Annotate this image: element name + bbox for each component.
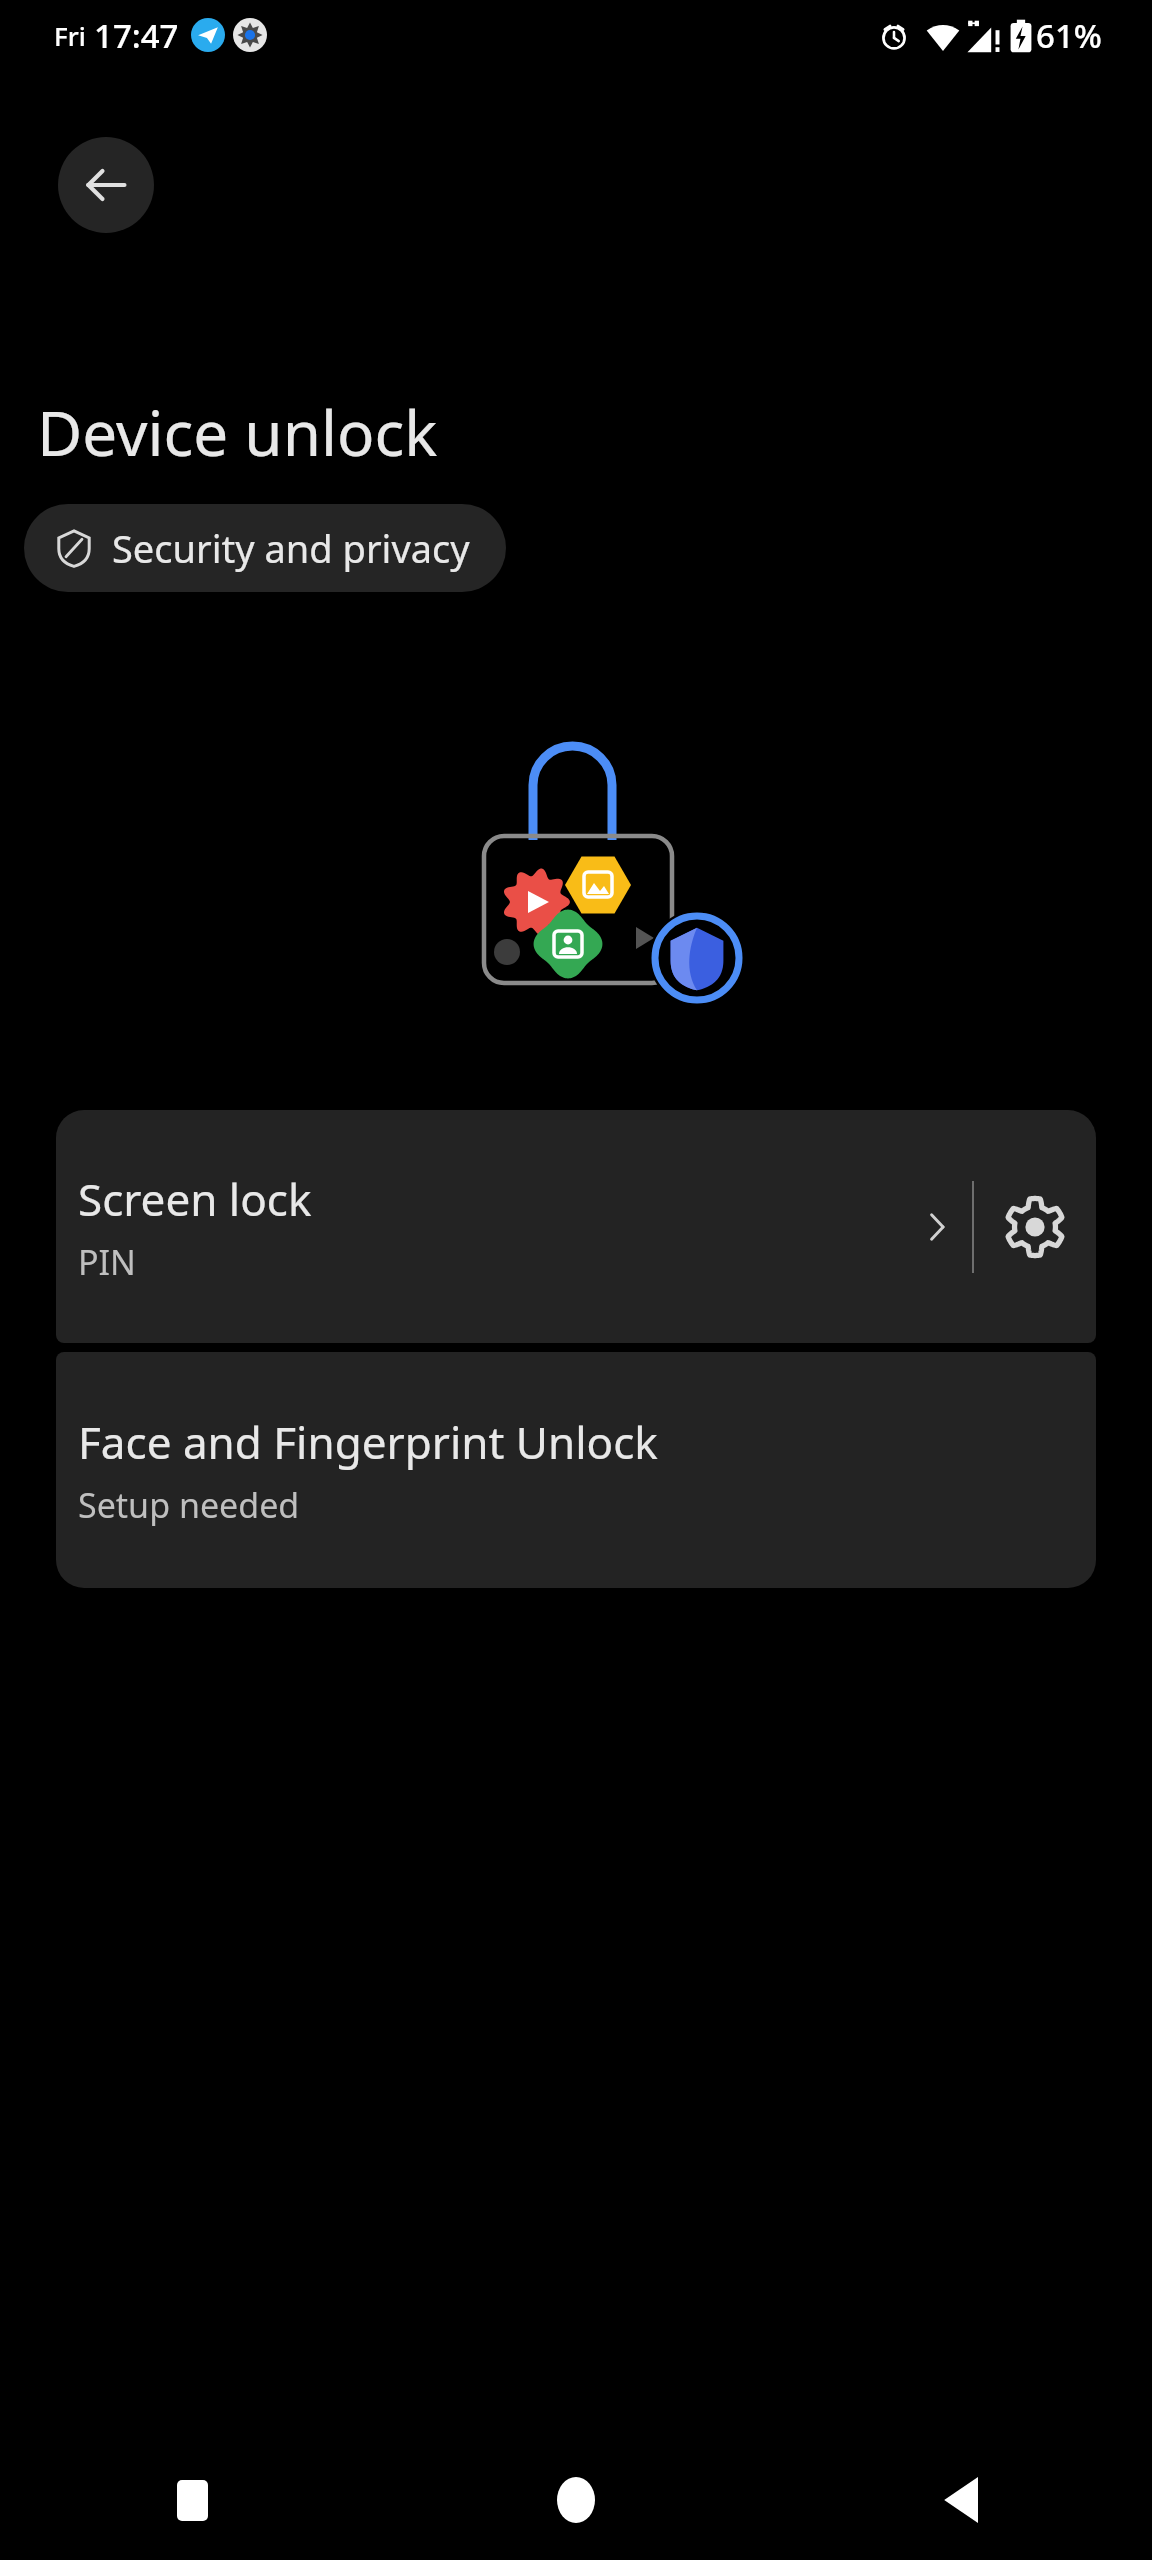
button[interactable]: Face and Fingerprint Unlock [56, 1352, 1096, 1588]
button[interactable]: Home [384, 2440, 768, 2560]
staticText: Device unlock [37, 390, 438, 474]
button[interactable]: Recent apps [0, 2440, 384, 2560]
button[interactable]: Screen lock settings [974, 1110, 1096, 1343]
staticText: Setup needed [78, 1482, 300, 1528]
button[interactable]: Security and privacy [24, 504, 506, 592]
staticText: Security and privacy [112, 522, 470, 574]
staticText: Face and Fingerprint Unlock [78, 1412, 658, 1472]
staticText: Fri [54, 18, 86, 53]
staticText: PIN [78, 1239, 136, 1285]
staticText: Screen lock [78, 1169, 312, 1229]
button[interactable]: Back [768, 2440, 1152, 2560]
button[interactable]: Back [58, 137, 154, 233]
staticText: 17:47 [94, 13, 179, 58]
button[interactable]: Screen lock [56, 1110, 902, 1343]
staticText: 61% [1036, 13, 1102, 58]
